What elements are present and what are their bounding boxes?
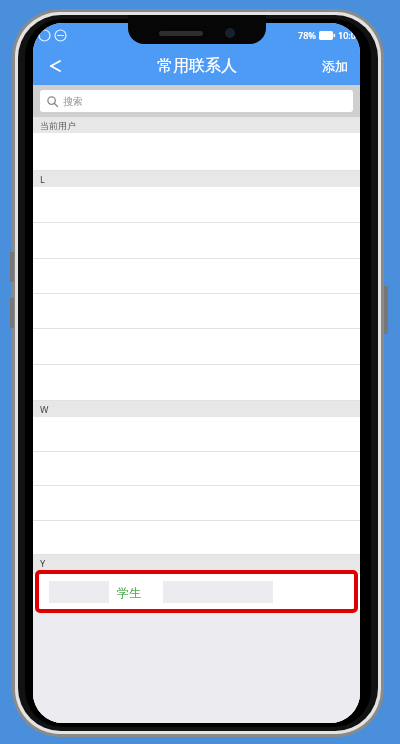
staticText: L <box>40 173 45 185</box>
button[interactable] <box>33 452 360 486</box>
button[interactable] <box>33 259 360 294</box>
staticText: 学生 <box>117 585 141 600</box>
button[interactable]: 添加 <box>310 47 360 85</box>
staticText: 当前用户 <box>40 120 76 131</box>
button[interactable]: 搜索 <box>40 90 353 112</box>
button[interactable] <box>33 187 360 223</box>
button[interactable] <box>33 365 360 401</box>
button[interactable] <box>33 133 360 171</box>
button[interactable] <box>33 294 360 329</box>
button[interactable] <box>33 223 360 259</box>
button[interactable]: Back <box>33 47 77 85</box>
staticText: 78% <box>298 29 316 41</box>
button[interactable] <box>33 521 360 555</box>
staticText: 搜索 <box>63 95 83 108</box>
button[interactable] <box>33 486 360 521</box>
button[interactable] <box>33 417 360 452</box>
button[interactable]: 学生 <box>33 574 360 610</box>
staticText: W <box>40 403 49 415</box>
staticText: 添加 <box>322 58 348 74</box>
button[interactable] <box>33 329 360 365</box>
staticText: 10:0 <box>338 29 356 41</box>
staticText: Y <box>40 557 46 569</box>
staticText: 常用联系人 <box>157 56 237 76</box>
